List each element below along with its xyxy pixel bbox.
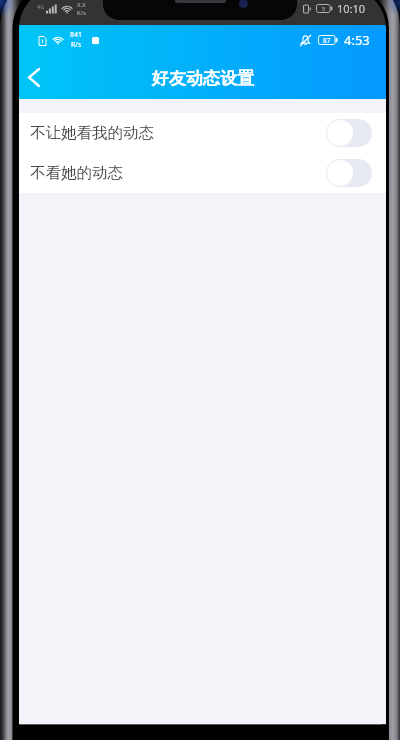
- staticText: 841: [70, 30, 83, 40]
- staticText: X.X: [77, 1, 86, 9]
- staticText: 10:10: [337, 1, 366, 16]
- button[interactable]: 不让她看我的动态: [19, 113, 386, 153]
- staticText: 4:53: [344, 31, 370, 49]
- staticText: 不让她看我的动态: [30, 123, 154, 143]
- staticText: R/s: [71, 40, 82, 50]
- button[interactable]: Back: [19, 55, 49, 99]
- staticText: 5: [322, 5, 326, 13]
- staticText: 好友动态设置: [152, 68, 254, 89]
- staticText: 不看她的动态: [30, 163, 123, 183]
- staticText: K/s: [77, 9, 86, 17]
- button[interactable]: Toggle 不看她的动态: [326, 159, 372, 187]
- staticText: 87: [323, 36, 331, 45]
- button[interactable]: Toggle 不让她看我的动态: [326, 119, 372, 147]
- button[interactable]: 不看她的动态: [19, 153, 386, 193]
- staticText: 4G: [37, 3, 45, 10]
